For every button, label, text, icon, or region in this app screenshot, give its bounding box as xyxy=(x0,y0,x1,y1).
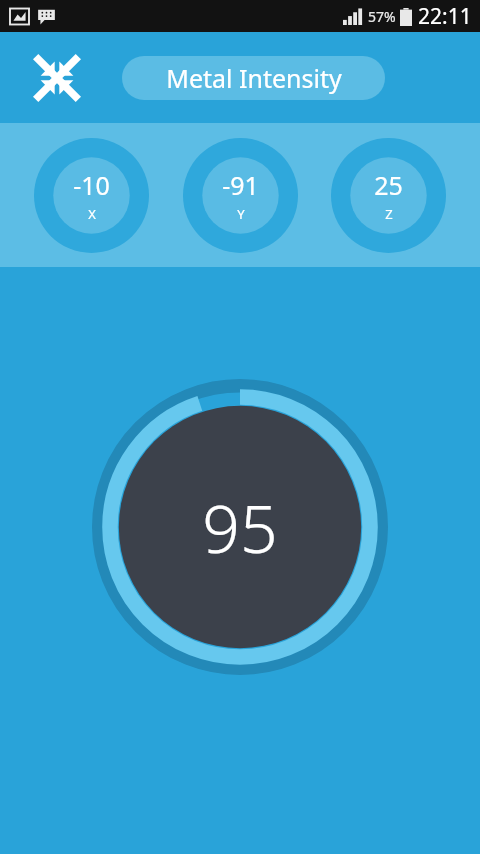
button[interactable]: -91 xyxy=(183,138,298,253)
button[interactable]: Metal Intensity xyxy=(122,56,385,100)
staticText: 25 xyxy=(374,168,403,202)
staticText: 22:11 xyxy=(418,2,472,31)
staticText: Y xyxy=(237,205,245,223)
staticText: 95 xyxy=(202,482,278,572)
staticText: Z xyxy=(385,205,393,223)
button[interactable]: -10 xyxy=(34,138,149,253)
button[interactable]: Collapse xyxy=(26,47,88,109)
button[interactable]: 95 xyxy=(92,379,388,675)
staticText: 57% xyxy=(368,7,396,26)
staticText: -91 xyxy=(222,168,259,202)
button[interactable]: 25 xyxy=(331,138,446,253)
staticText: X xyxy=(88,205,96,223)
staticText: -10 xyxy=(73,168,110,202)
staticText: Metal Intensity xyxy=(166,61,342,95)
